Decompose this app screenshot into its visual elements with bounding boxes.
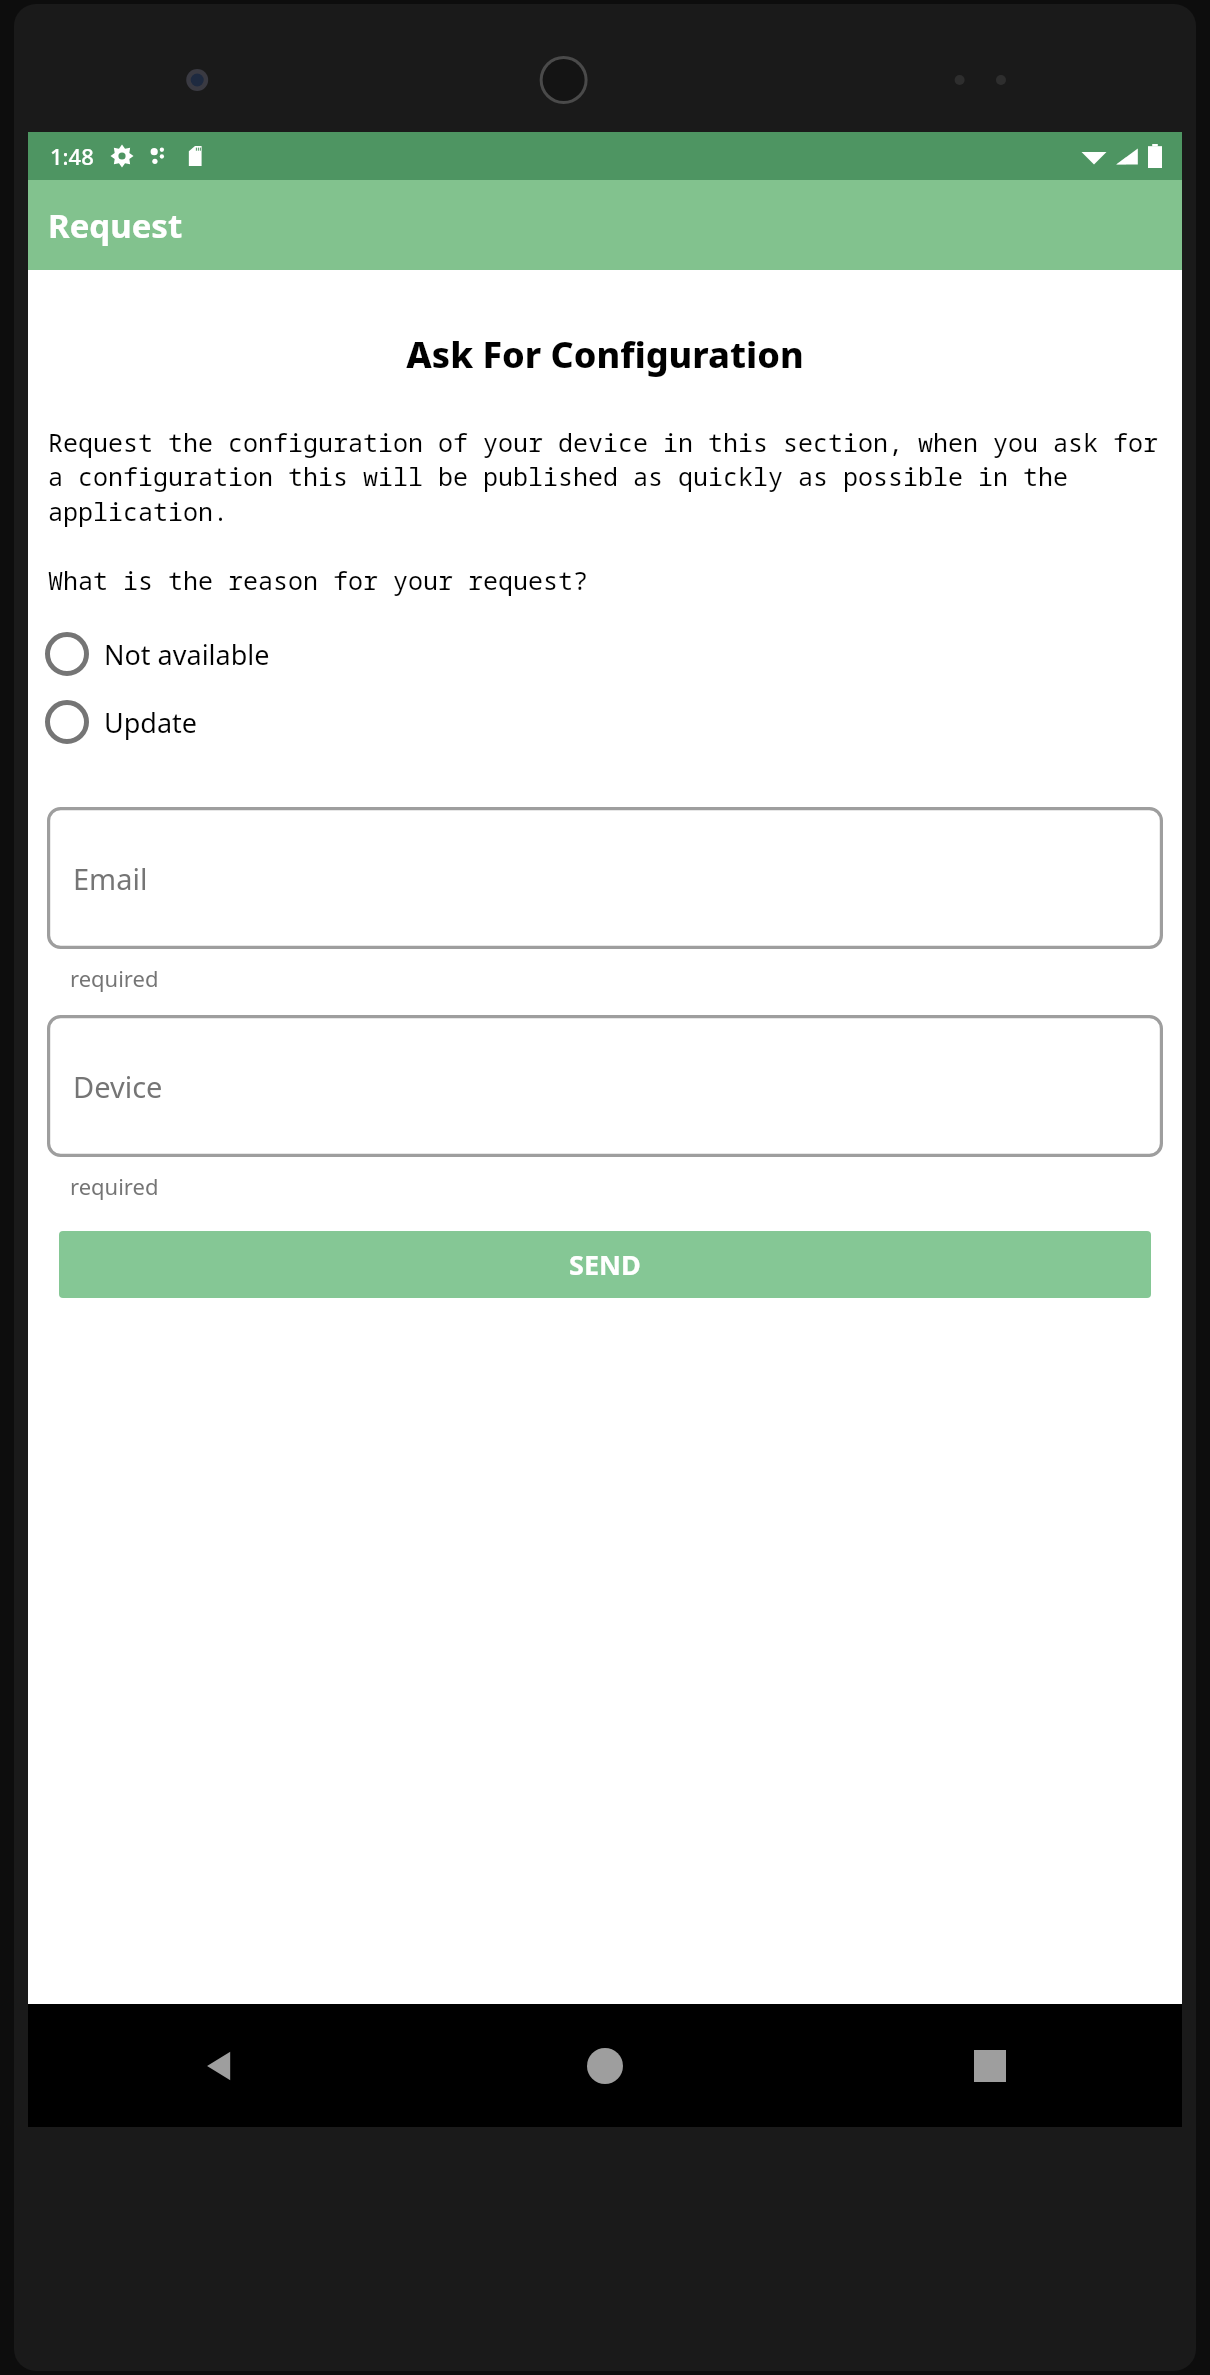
button[interactable]: Back: [28, 2004, 412, 2127]
button[interactable]: Not available: [44, 623, 1166, 685]
button[interactable]: SEND: [59, 1231, 1151, 1298]
staticText: Update: [104, 704, 198, 741]
button[interactable]: Home: [412, 2004, 797, 2127]
staticText: Device: [73, 1067, 163, 1106]
staticText: SEND: [569, 1246, 641, 1283]
staticText: Not available: [104, 636, 270, 673]
staticText: required: [70, 1171, 1182, 1201]
staticText: Request: [48, 203, 183, 248]
button[interactable]: Recent apps: [797, 2004, 1182, 2127]
staticText: Ask For Configuration: [28, 330, 1182, 379]
button[interactable]: Device: [47, 1015, 1163, 1157]
staticText: required: [70, 963, 1182, 993]
staticText: What is the reason for your request?: [48, 563, 1162, 597]
button[interactable]: Email: [47, 807, 1163, 949]
staticText: Email: [73, 859, 148, 898]
staticText: 1:48: [50, 141, 94, 171]
button[interactable]: Update: [44, 691, 1166, 753]
staticText: Request the configuration of your device…: [48, 425, 1162, 529]
